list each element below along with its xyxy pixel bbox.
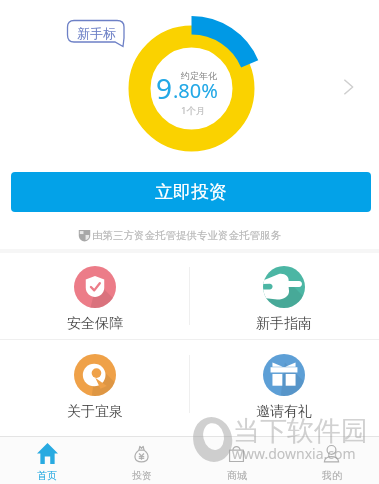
- staticText: 9: [156, 69, 173, 107]
- button[interactable]: 首页: [0, 436, 94, 484]
- staticText: 新手指南: [256, 315, 312, 333]
- button[interactable]: 立即投资: [11, 172, 371, 212]
- staticText: 约定年化: [181, 70, 217, 81]
- staticText: 首页: [37, 469, 57, 482]
- staticText: 当下软件园: [233, 414, 368, 448]
- staticText: 安全保障: [67, 315, 123, 333]
- staticText: 立即投资: [155, 181, 227, 204]
- button[interactable]: 新手指南: [189, 256, 379, 342]
- staticText: 由第三方资金托管提供专业资金托管服务: [92, 229, 281, 242]
- staticText: 关于宜泉: [67, 403, 123, 421]
- button[interactable]: 关于宜泉: [0, 343, 189, 432]
- button[interactable]: 我的: [284, 436, 379, 484]
- button[interactable]: 投资: [94, 436, 189, 484]
- staticText: 1个月: [181, 104, 206, 117]
- staticText: 邀请有礼: [256, 403, 312, 421]
- staticText: .80%: [173, 77, 218, 104]
- staticText: 我的: [322, 469, 342, 482]
- staticText: www.downxia.com: [232, 444, 356, 463]
- button[interactable]: 安全保障: [0, 256, 189, 342]
- button[interactable]: 商城: [189, 436, 284, 484]
- button[interactable]: 邀请有礼: [189, 343, 379, 432]
- button[interactable]: More: [335, 74, 361, 100]
- button[interactable]: 新手标: [67, 20, 125, 47]
- staticText: 投资: [132, 469, 152, 482]
- staticText: 商城: [227, 469, 247, 482]
- staticText: 新手标: [77, 25, 116, 41]
